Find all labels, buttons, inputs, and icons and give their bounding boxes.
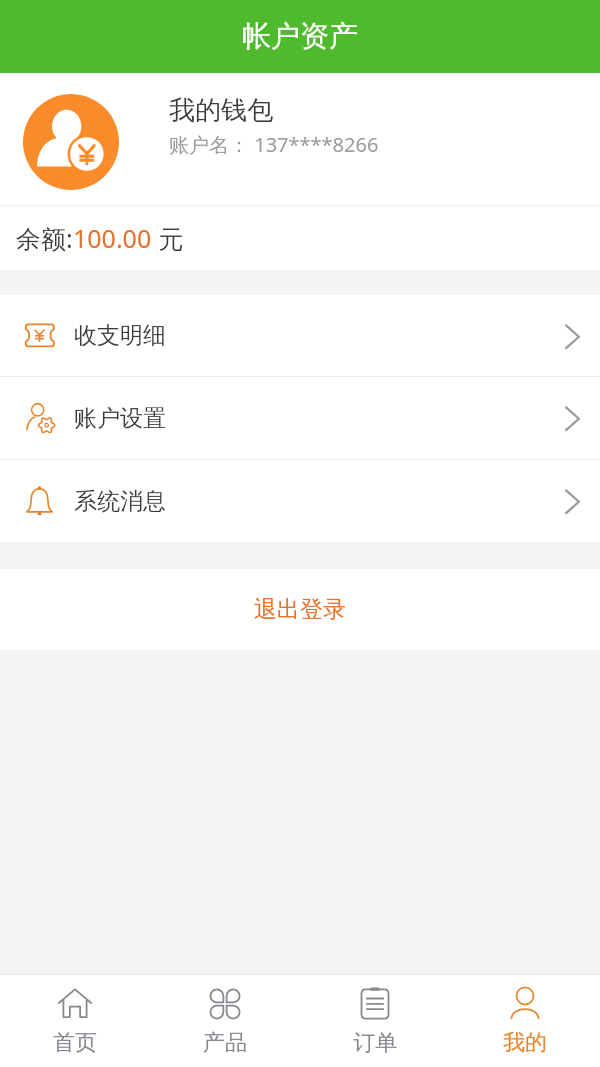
staticText: 我的 bbox=[503, 1029, 547, 1057]
staticText: 系统消息 bbox=[74, 487, 166, 516]
button[interactable]: 系统消息 bbox=[0, 460, 600, 542]
button[interactable]: 首页 bbox=[0, 975, 150, 1067]
button[interactable]: 退出登录 bbox=[0, 569, 600, 650]
staticText: 账户设置 bbox=[74, 404, 166, 433]
button[interactable]: 我的钱包 账户名 137****8266 bbox=[0, 73, 600, 205]
button[interactable]: 产品 bbox=[150, 975, 300, 1067]
staticText: 余额: bbox=[16, 221, 73, 255]
staticText: 我的钱包 bbox=[169, 94, 273, 127]
staticText: 帐户资产 bbox=[242, 18, 358, 55]
button[interactable]: 收支明细 bbox=[0, 295, 600, 376]
button[interactable]: 我的 bbox=[450, 975, 600, 1067]
staticText: 100.00 bbox=[73, 221, 152, 255]
staticText: 元 bbox=[152, 221, 184, 255]
staticText: 退出登录 bbox=[254, 595, 346, 624]
staticText: 订单 bbox=[353, 1029, 397, 1057]
staticText: 首页 bbox=[53, 1029, 97, 1057]
button[interactable]: 订单 bbox=[300, 975, 450, 1067]
staticText: 收支明细 bbox=[74, 321, 166, 350]
staticText: 产品 bbox=[203, 1029, 247, 1057]
button[interactable]: 账户设置 bbox=[0, 377, 600, 459]
staticText: 账户名： 137****8266 bbox=[169, 131, 379, 158]
